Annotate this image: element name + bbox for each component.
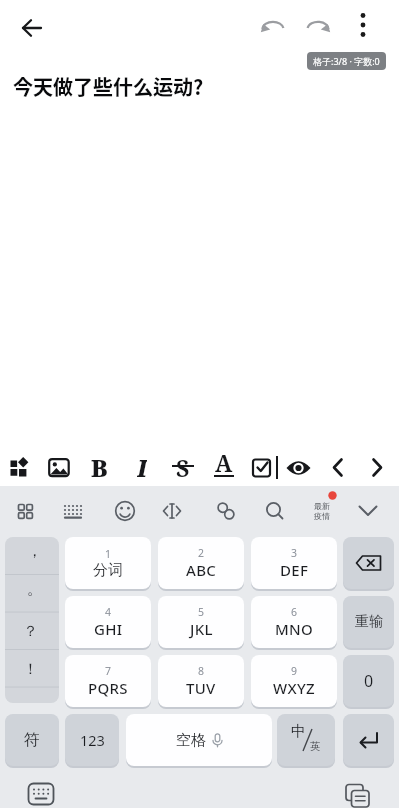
staticText: PQRS <box>88 678 128 698</box>
button[interactable] <box>48 455 70 479</box>
button[interactable]: 重输 <box>343 596 394 648</box>
button[interactable] <box>304 16 331 38</box>
staticText: 3 <box>291 546 298 560</box>
button[interactable] <box>344 782 372 808</box>
staticText: 格子:3/8 · 字数:0 <box>313 55 380 67</box>
staticText: 。 <box>27 580 42 599</box>
staticText: 8 <box>198 664 205 678</box>
button[interactable]: 1 <box>65 537 151 589</box>
staticText: 5 <box>198 605 205 619</box>
staticText: 最新 疫情 <box>314 501 330 521</box>
staticText: 英 <box>310 740 321 753</box>
button[interactable]: A <box>212 447 235 473</box>
staticText: ！ <box>23 660 38 679</box>
staticText: A <box>215 447 233 473</box>
button[interactable]: 4 <box>65 596 151 648</box>
staticText: ？ <box>23 622 38 641</box>
staticText: ABC <box>186 560 217 580</box>
staticText: 2 <box>198 546 205 560</box>
button[interactable]: 5 <box>158 596 244 648</box>
button[interactable]: 2 <box>158 537 244 589</box>
button[interactable]: 7 <box>65 655 151 707</box>
button[interactable]: 123 <box>65 714 119 766</box>
button[interactable]: 空格 <box>126 714 272 766</box>
staticText: 分词 <box>93 561 124 580</box>
button[interactable] <box>367 456 387 480</box>
button[interactable] <box>328 456 348 480</box>
button[interactable] <box>8 453 32 479</box>
button[interactable] <box>343 714 394 766</box>
button[interactable]: 符 <box>5 714 59 766</box>
button[interactable] <box>161 501 183 521</box>
staticText: 6 <box>291 605 298 619</box>
button[interactable] <box>16 14 48 42</box>
button[interactable] <box>62 503 84 520</box>
button[interactable] <box>353 11 373 41</box>
staticText: MNO <box>275 619 314 639</box>
staticText: GHI <box>94 619 123 639</box>
button[interactable]: B <box>87 452 111 480</box>
button[interactable] <box>215 500 237 522</box>
staticText: B <box>91 452 108 480</box>
staticText: 重输 <box>355 613 383 631</box>
staticText: 空格 <box>176 731 206 750</box>
staticText: TUV <box>186 678 216 698</box>
button[interactable] <box>286 458 312 478</box>
staticText: 中 <box>291 722 306 741</box>
staticText: 4 <box>105 605 112 619</box>
button[interactable] <box>5 537 59 703</box>
button[interactable]: 0 <box>343 655 394 707</box>
staticText: JKL <box>190 619 213 639</box>
button[interactable] <box>260 16 287 38</box>
button[interactable]: 6 <box>251 596 337 648</box>
staticText: WXYZ <box>273 678 315 698</box>
button[interactable]: S <box>171 452 194 480</box>
staticText: 今天做了些什么运动? <box>13 72 204 100</box>
button[interactable]: I <box>130 452 153 480</box>
button[interactable]: 3 <box>251 537 337 589</box>
button[interactable]: 最新 疫情 <box>306 497 338 525</box>
button[interactable]: 8 <box>158 655 244 707</box>
staticText: 符 <box>24 730 40 750</box>
button[interactable] <box>251 456 275 480</box>
button[interactable] <box>27 781 55 807</box>
button[interactable] <box>17 503 35 520</box>
staticText: 0 <box>364 670 374 692</box>
staticText: ， <box>27 542 42 561</box>
button[interactable] <box>343 537 394 589</box>
button[interactable] <box>264 500 286 522</box>
button[interactable]: 9 <box>251 655 337 707</box>
staticText: 123 <box>80 730 105 750</box>
staticText: 1 <box>105 547 112 561</box>
staticText: S <box>176 452 190 480</box>
button[interactable] <box>357 502 379 520</box>
staticText: 7 <box>105 664 112 678</box>
staticText: DEF <box>280 560 309 580</box>
button[interactable]: 中 <box>277 714 335 766</box>
staticText: I <box>137 452 147 480</box>
button[interactable] <box>114 500 136 522</box>
staticText: 9 <box>291 664 298 678</box>
